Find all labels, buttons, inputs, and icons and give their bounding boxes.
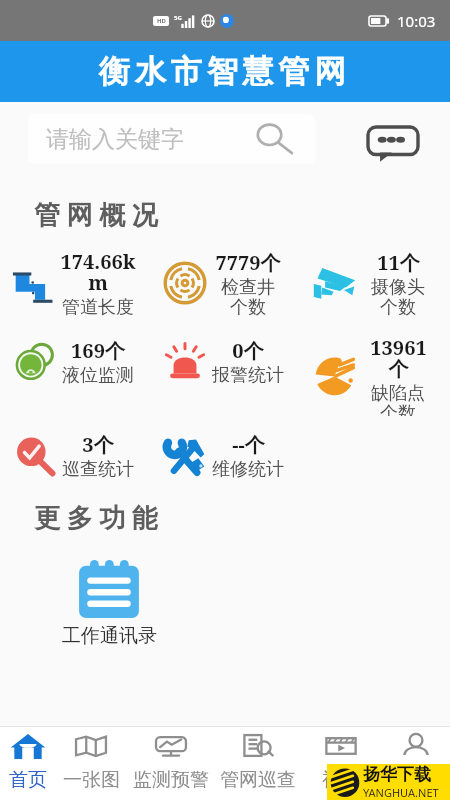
staticText: 169个: [71, 337, 125, 364]
staticText: HD: [157, 17, 166, 25]
button[interactable]: 11个: [300, 238, 450, 328]
staticText: 请输入关键字: [46, 125, 184, 154]
staticText: 5G: [174, 14, 182, 22]
staticText: 视频: [322, 768, 360, 792]
button[interactable]: 工作通讯录: [0, 560, 218, 648]
button[interactable]: 3个: [0, 410, 150, 502]
staticText: 液位监测: [62, 364, 134, 387]
staticText: 报警统计: [212, 364, 284, 387]
button[interactable]: 视频: [301, 727, 381, 800]
button[interactable]: 一张图: [55, 727, 127, 800]
button[interactable]: 174.66k m: [0, 238, 150, 328]
staticText: 扬华下载: [363, 764, 431, 785]
staticText: 3个: [82, 431, 114, 458]
staticText: 首页: [9, 768, 47, 792]
staticText: 巡查统计: [62, 458, 134, 481]
button[interactable]: 管网巡查: [214, 727, 301, 800]
staticText: 管网巡查: [220, 768, 296, 792]
staticText: 缺陷点 个数: [371, 382, 425, 416]
button[interactable]: --个: [150, 410, 300, 502]
staticText: 174.66k m: [60, 248, 136, 296]
button[interactable]: 监测预警: [127, 727, 214, 800]
staticText: 13961 个: [370, 334, 427, 382]
staticText: 一张图: [63, 768, 120, 792]
button[interactable]: 请输入关键字: [28, 114, 315, 164]
staticText: 0个: [232, 337, 264, 364]
button[interactable]: 7779个: [150, 238, 300, 328]
staticText: 检查井 个数: [221, 276, 275, 318]
staticText: YANGHUA.NET: [363, 785, 439, 800]
staticText: 摄像头 个数: [371, 276, 425, 318]
staticText: 10:03: [397, 11, 436, 31]
staticText: 我的: [397, 768, 435, 792]
button[interactable]: 首页: [0, 727, 55, 800]
staticText: 管网概况: [31, 199, 161, 232]
staticText: 维修统计: [212, 458, 284, 481]
button[interactable]: 169个: [0, 328, 150, 410]
staticText: --个: [232, 431, 265, 458]
staticText: 工作通讯录: [62, 624, 157, 648]
staticText: 管道长度: [62, 296, 134, 319]
staticText: 7779个: [215, 249, 281, 276]
staticText: 衡水市智慧管网: [99, 52, 351, 91]
button[interactable]: 消息: [364, 113, 422, 171]
button[interactable]: 我的: [381, 727, 450, 800]
button[interactable]: 0个: [150, 328, 300, 410]
staticText: 更多功能: [31, 502, 161, 535]
button[interactable]: 13961 个: [300, 328, 450, 410]
staticText: 11个: [377, 249, 420, 276]
staticText: 监测预警: [133, 768, 209, 792]
